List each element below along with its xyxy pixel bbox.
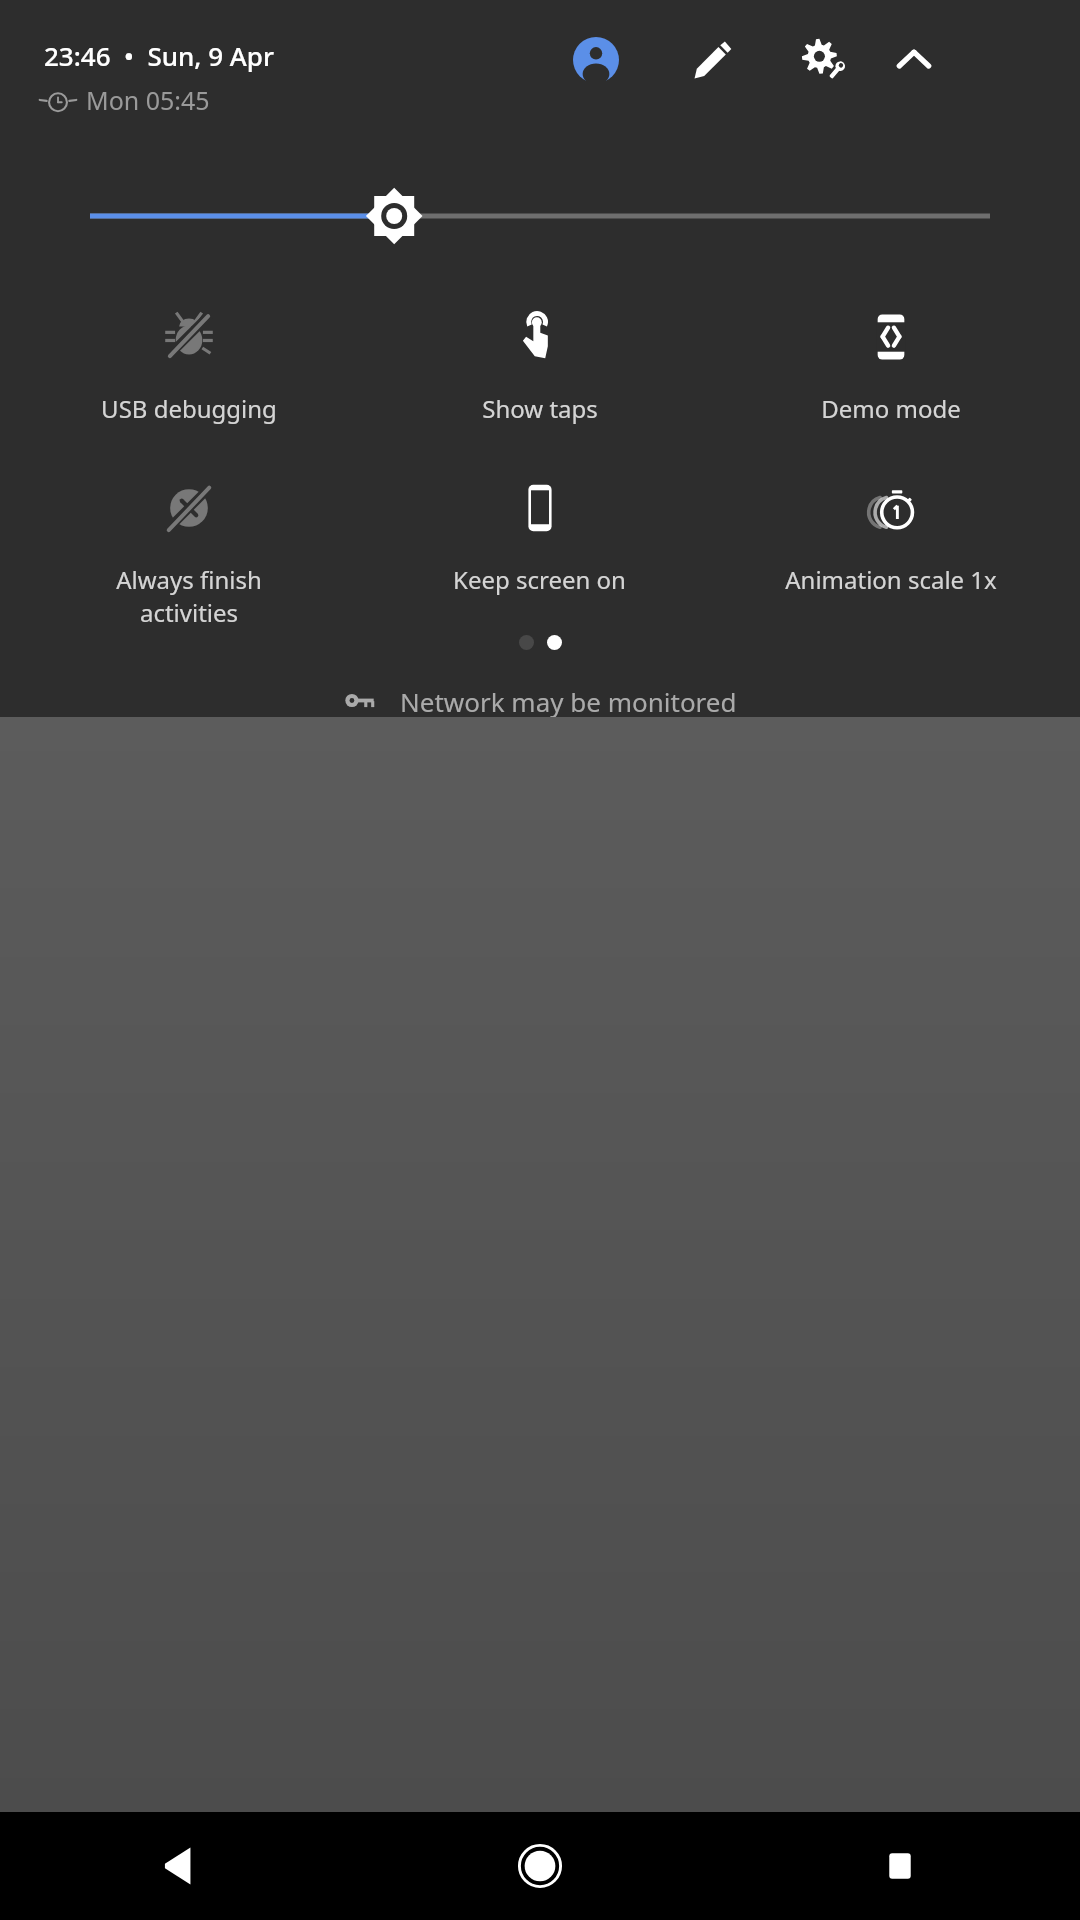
button[interactable]: Demo mode xyxy=(715,302,1066,431)
staticText: Mon 05:45 xyxy=(86,83,210,117)
button[interactable]: Show taps xyxy=(364,302,715,431)
staticText: 23:46 • Sun, 9 Apr xyxy=(44,38,274,73)
staticText: Keep screen on xyxy=(453,563,626,596)
staticText: Show taps xyxy=(482,392,598,425)
button[interactable]: Keep screen on xyxy=(364,473,715,602)
button[interactable]: Brightness xyxy=(90,174,990,258)
staticText: Animation scale 1x xyxy=(785,563,997,596)
button[interactable]: Back xyxy=(0,1812,360,1920)
button[interactable]: Settings xyxy=(794,30,854,90)
staticText: Network may be monitored xyxy=(400,684,737,717)
button[interactable]: Collapse xyxy=(884,30,944,90)
button[interactable]: User xyxy=(566,30,626,90)
button[interactable]: Network may be monitored xyxy=(0,684,1080,717)
button[interactable]: Home xyxy=(360,1812,720,1920)
staticText: USB debugging xyxy=(101,392,277,425)
staticText: Always finish activities xyxy=(116,563,262,629)
staticText: Demo mode xyxy=(821,392,961,425)
button[interactable]: USB debugging xyxy=(14,302,364,431)
button[interactable]: Edit xyxy=(682,30,742,90)
button[interactable]: Always finish activities xyxy=(14,473,364,635)
button[interactable]: Animation scale 1x xyxy=(715,473,1066,602)
button[interactable]: Recent apps xyxy=(720,1812,1080,1920)
